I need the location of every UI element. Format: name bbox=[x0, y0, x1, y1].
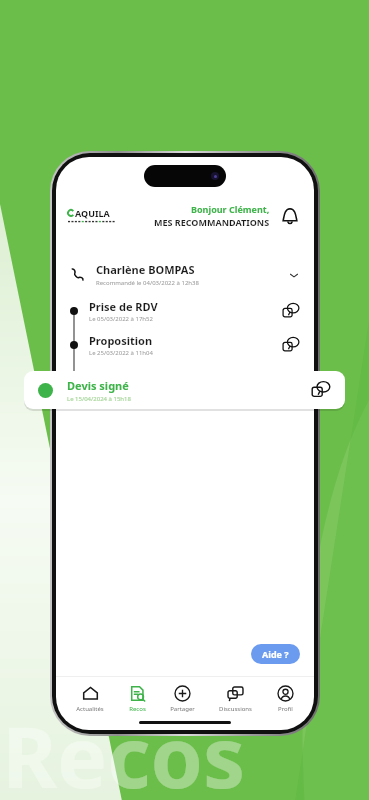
button[interactable]: Profil bbox=[273, 683, 298, 715]
button[interactable]: Devis signé bbox=[24, 371, 345, 409]
staticText: Mission terminée bbox=[88, 391, 184, 395]
button[interactable]: Notifications bbox=[278, 204, 302, 228]
staticText: Le 05/03/2022 à 17h52 bbox=[89, 315, 153, 323]
staticText: MES RECOMMANDATIONS bbox=[154, 216, 270, 228]
staticText: Aide ? bbox=[262, 648, 289, 660]
button[interactable]: Prise de RDV bbox=[56, 299, 314, 323]
button[interactable]: Aide ? bbox=[251, 644, 300, 664]
staticText: Recos bbox=[129, 705, 146, 713]
staticText: Charlène BOMPAS bbox=[96, 262, 195, 277]
staticText: Discussions bbox=[219, 705, 252, 713]
staticText: Bonjour Clément, bbox=[191, 203, 270, 215]
button[interactable]: Actualités bbox=[72, 683, 108, 715]
staticText: Prise de RDV bbox=[89, 299, 158, 314]
button[interactable]: Partager bbox=[166, 683, 199, 715]
button[interactable]: Discussions bbox=[215, 683, 256, 715]
staticText: Proposition bbox=[89, 333, 153, 348]
staticText: Le 25/03/2022 à 11h04 bbox=[89, 349, 153, 357]
staticText: Actualités bbox=[76, 705, 104, 713]
button[interactable]: Recos bbox=[125, 683, 150, 715]
staticText: Recommandé le 04/03/2022 à 12h38 bbox=[96, 279, 199, 287]
button[interactable]: Mission terminée bbox=[56, 391, 314, 395]
staticText: Profil bbox=[278, 705, 293, 713]
button[interactable]: Charlène BOMPAS bbox=[56, 258, 314, 291]
staticText: AQUILA bbox=[75, 207, 110, 219]
staticText: Devis signé bbox=[67, 378, 129, 393]
button[interactable]: Proposition bbox=[56, 333, 314, 357]
staticText: Recos bbox=[2, 698, 246, 800]
staticText: Partager bbox=[170, 705, 195, 713]
staticText: Le 15/04/2024 à 15h18 bbox=[67, 395, 131, 403]
